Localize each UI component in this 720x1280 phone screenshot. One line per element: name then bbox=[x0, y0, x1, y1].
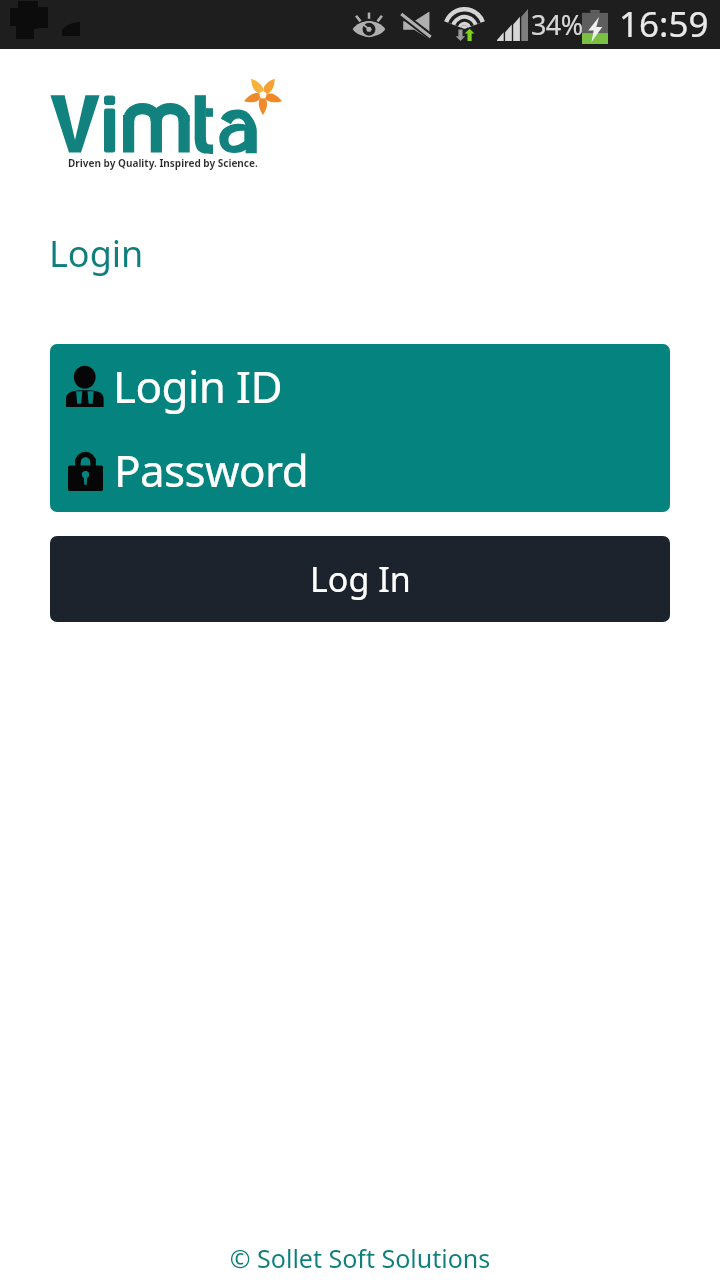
button[interactable]: Log In bbox=[50, 536, 670, 622]
staticText: Log In bbox=[310, 556, 411, 602]
button[interactable]: Password field bbox=[50, 428, 670, 512]
staticText: 34% bbox=[531, 6, 583, 43]
staticText: 16:59 bbox=[619, 0, 709, 48]
staticText: Password bbox=[114, 440, 309, 500]
staticText: © Sollet Soft Solutions bbox=[0, 1241, 720, 1275]
button[interactable]: Login ID field bbox=[50, 344, 670, 428]
staticText: Login ID bbox=[113, 356, 282, 416]
staticText: Driven by Quality. Inspired by Science. bbox=[68, 156, 258, 170]
staticText: Login bbox=[49, 229, 144, 278]
